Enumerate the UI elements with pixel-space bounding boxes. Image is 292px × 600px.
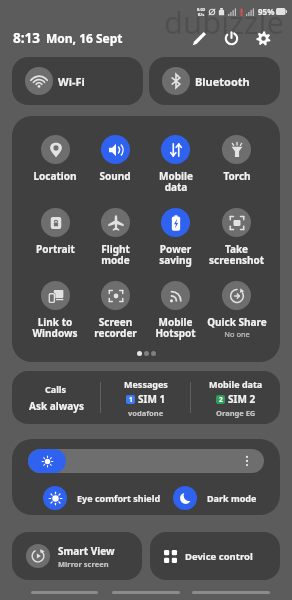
staticText: Smart View <box>58 544 115 558</box>
staticText: Dark mode <box>207 492 257 504</box>
button[interactable]: Power off <box>218 25 244 51</box>
button[interactable]: Flight mode <box>85 208 145 281</box>
staticText: Screen recorder <box>94 315 137 340</box>
staticText: Wi-Fi <box>58 74 85 89</box>
staticText: vodafone <box>128 408 164 418</box>
staticText: Sound <box>99 169 131 183</box>
staticText: Messages <box>124 378 168 390</box>
button[interactable]: Link to Windows <box>25 281 85 354</box>
staticText: 95% <box>258 6 275 17</box>
button[interactable]: Brightness options <box>28 449 264 473</box>
button[interactable]: Location <box>25 135 85 208</box>
staticText: Eye comfort shield <box>77 492 161 504</box>
button[interactable]: Dark mode <box>173 486 257 510</box>
button[interactable]: Calls <box>12 371 100 424</box>
staticText: Mobile data <box>159 169 193 194</box>
button[interactable]: Power saving <box>145 208 206 281</box>
staticText: 8:13 <box>13 29 40 47</box>
staticText: 2 <box>219 395 223 404</box>
button[interactable]: Screen recorder <box>85 281 145 354</box>
staticText: Power saving <box>159 242 192 267</box>
staticText: Mobile Hotspot <box>155 315 196 340</box>
button[interactable]: Sound <box>85 135 145 208</box>
button[interactable]: Device control <box>150 532 280 580</box>
staticText: Torch <box>223 169 251 183</box>
button[interactable]: Messages <box>101 371 190 424</box>
staticText: Ask always <box>29 399 84 413</box>
button[interactable]: Edit quick settings <box>186 25 212 51</box>
button[interactable]: Mobile data <box>191 371 280 424</box>
button[interactable]: Quick Share <box>206 281 267 354</box>
staticText: Quick Share <box>207 315 267 329</box>
staticText: Mobile data <box>209 378 263 390</box>
staticText: No one <box>224 329 250 339</box>
button[interactable]: Settings <box>250 25 276 51</box>
staticText: SIM 2 <box>228 392 256 406</box>
button[interactable]: Home <box>112 591 180 594</box>
button[interactable]: Bluetooth <box>149 57 280 105</box>
staticText: 0.02 K/s <box>197 7 205 17</box>
button[interactable]: Brightness options <box>240 454 254 468</box>
button[interactable]: Eye comfort shield <box>43 486 161 510</box>
button[interactable]: Mobile data <box>145 135 206 208</box>
staticText: Bluetooth <box>195 74 250 89</box>
button[interactable]: Take screenshot <box>206 208 267 281</box>
button[interactable]: Torch <box>206 135 267 208</box>
staticText: SIM 1 <box>138 392 166 406</box>
button[interactable]: Smart View <box>12 532 142 580</box>
staticText: Device control <box>185 550 253 563</box>
staticText: 1 <box>129 395 133 404</box>
staticText: Calls <box>45 383 67 395</box>
button[interactable]: Mobile Hotspot <box>145 281 206 354</box>
staticText: dubizzle <box>164 1 284 43</box>
button[interactable]: Wi-Fi <box>12 57 143 105</box>
staticText: Mon, 16 Sept <box>46 30 123 46</box>
staticText: Link to Windows <box>32 315 78 340</box>
button[interactable]: Back <box>192 591 270 594</box>
staticText: Portrait <box>36 242 75 256</box>
staticText: Take screenshot <box>209 242 264 267</box>
staticText: Orange EG <box>216 408 256 418</box>
button[interactable]: Portrait <box>25 208 85 281</box>
staticText: Location <box>33 169 77 183</box>
button[interactable]: Recents <box>31 591 98 594</box>
staticText: Mirror screen <box>58 559 109 569</box>
staticText: Flight mode <box>101 242 130 267</box>
